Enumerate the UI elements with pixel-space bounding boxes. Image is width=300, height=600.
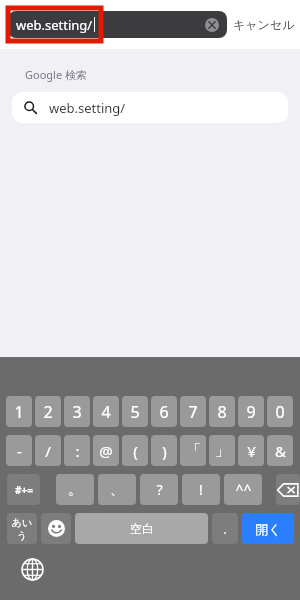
button[interactable]: & <box>267 435 293 466</box>
button[interactable]: ! <box>182 474 220 505</box>
staticText: 9 <box>246 401 256 423</box>
button[interactable]: Backspace <box>276 474 300 505</box>
button[interactable]: 空白 <box>75 513 208 544</box>
staticText: ( <box>133 441 138 461</box>
staticText: web.setting/ <box>16 16 93 34</box>
button[interactable]: 「 <box>180 435 206 466</box>
button[interactable]: web.setting/ <box>12 92 288 123</box>
button[interactable]: 1 <box>6 396 32 427</box>
staticText: 3 <box>72 401 82 423</box>
button[interactable]: 」 <box>209 435 235 466</box>
staticText: 8 <box>217 401 227 423</box>
button[interactable]: 開く <box>242 513 294 544</box>
staticText: & <box>275 441 286 461</box>
button[interactable]: @ <box>93 435 119 466</box>
button[interactable]: 8 <box>209 396 235 427</box>
button[interactable]: 5 <box>122 396 148 427</box>
staticText: web.setting/ <box>49 99 126 117</box>
staticText: 5 <box>130 401 140 423</box>
staticText: 7 <box>188 401 198 423</box>
button[interactable]: 3 <box>64 396 90 427</box>
staticText: ! <box>199 480 203 499</box>
staticText: 6 <box>159 401 169 423</box>
staticText: あいう <box>7 516 37 542</box>
staticText: 。 <box>68 481 82 499</box>
button[interactable]: web.setting/ <box>8 11 227 38</box>
staticText: #+= <box>15 483 33 497</box>
staticText: 空白 <box>130 521 154 536</box>
button[interactable]: 9 <box>238 396 264 427</box>
staticText: 1 <box>14 401 24 423</box>
button[interactable]: Emoji <box>41 513 71 544</box>
button[interactable]: ¥ <box>238 435 264 466</box>
staticText: - <box>17 441 22 461</box>
staticText: 、 <box>110 481 124 499</box>
button[interactable]: . <box>212 513 238 544</box>
button[interactable]: Clear text <box>205 18 219 32</box>
button[interactable]: / <box>35 435 61 466</box>
button[interactable]: - <box>6 435 32 466</box>
button[interactable]: 2 <box>35 396 61 427</box>
button[interactable]: Change keyboard language <box>21 558 44 581</box>
staticText: ^^ <box>235 480 252 499</box>
staticText: Google 検索 <box>25 67 87 82</box>
button[interactable]: : <box>64 435 90 466</box>
staticText: ¥ <box>247 441 256 461</box>
staticText: ) <box>162 441 167 461</box>
button[interactable]: #+= <box>7 474 40 505</box>
button[interactable]: あいう <box>7 513 37 544</box>
button[interactable]: 。 <box>56 474 94 505</box>
button[interactable]: ? <box>140 474 178 505</box>
staticText: 開く <box>255 521 282 537</box>
staticText: 」 <box>215 441 230 460</box>
button[interactable]: ) <box>151 435 177 466</box>
staticText: : <box>75 441 80 461</box>
button[interactable]: 6 <box>151 396 177 427</box>
button[interactable]: 4 <box>93 396 119 427</box>
button[interactable]: 0 <box>267 396 293 427</box>
button[interactable]: 7 <box>180 396 206 427</box>
staticText: @ <box>99 441 113 461</box>
staticText: ? <box>156 480 163 499</box>
staticText: / <box>45 441 51 461</box>
button[interactable]: キャンセル <box>233 17 295 32</box>
staticText: 4 <box>101 401 111 423</box>
staticText: キャンセル <box>233 17 295 32</box>
staticText: . <box>223 521 227 537</box>
staticText: 0 <box>275 401 285 423</box>
button[interactable]: ( <box>122 435 148 466</box>
staticText: 「 <box>186 441 201 460</box>
button[interactable]: ^^ <box>224 474 262 505</box>
button[interactable]: 、 <box>98 474 136 505</box>
staticText: 2 <box>43 401 53 423</box>
